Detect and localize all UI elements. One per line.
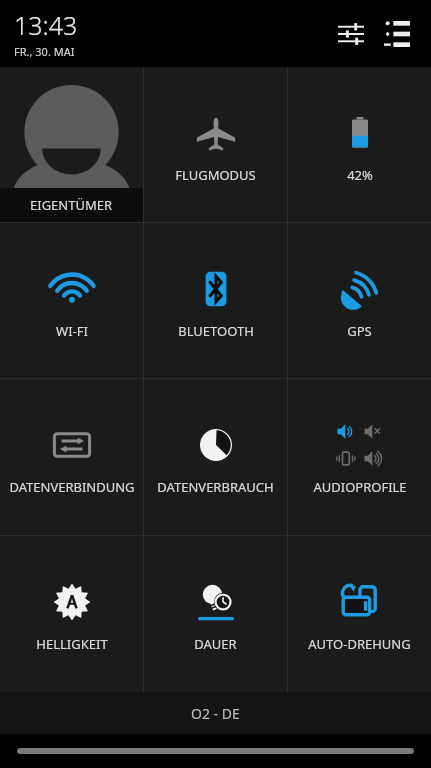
staticText: FLUGMODUS [175, 166, 256, 184]
button[interactable]: 42% [288, 67, 431, 222]
button[interactable]: Settings [331, 14, 371, 54]
button[interactable]: AUDIOPROFILE [288, 379, 431, 535]
staticText: EIGENTÜMER [30, 196, 113, 214]
button[interactable]: WI-FI [0, 223, 143, 378]
button[interactable]: O2 - DE [0, 692, 431, 734]
staticText: WI-FI [56, 322, 88, 340]
button[interactable]: FLUGMODUS [144, 67, 287, 222]
button[interactable]: Owner profile [0, 67, 143, 222]
staticText: FR., 30. MAI [14, 44, 75, 59]
button[interactable]: Drag handle [17, 748, 414, 754]
staticText: GPS [347, 322, 372, 340]
staticText: BLUETOOTH [178, 322, 254, 340]
staticText: DAUER [194, 635, 237, 653]
staticText: DATENVERBINDUNG [9, 478, 135, 496]
staticText: O2 - DE [191, 704, 240, 723]
staticText: DATENVERBRAUCH [157, 478, 274, 496]
button[interactable]: Notifications list [377, 14, 417, 54]
button[interactable]: DATENVERBRAUCH [144, 379, 287, 535]
staticText: 42% [347, 166, 373, 184]
staticText: AUDIOPROFILE [313, 478, 407, 496]
button[interactable]: HELLIGKEIT [0, 536, 143, 692]
button[interactable]: DAUER [144, 536, 287, 692]
staticText: HELLIGKEIT [36, 635, 108, 653]
staticText: AUTO-DREHUNG [308, 635, 411, 653]
button[interactable]: AUTO-DREHUNG [288, 536, 431, 692]
staticText: 13:43 [14, 8, 78, 42]
button[interactable]: BLUETOOTH [144, 223, 287, 378]
button[interactable]: GPS [288, 223, 431, 378]
button[interactable]: DATENVERBINDUNG [0, 379, 143, 535]
